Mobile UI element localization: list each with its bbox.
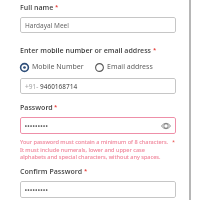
button[interactable]: Show password: [20, 117, 176, 134]
staticText: Your password must contain a minimum of …: [20, 138, 172, 160]
button[interactable]: +91-: [20, 78, 176, 94]
staticText: Full name: [20, 3, 54, 13]
staticText: 9460168714: [40, 82, 78, 91]
staticText: +91-: [25, 82, 39, 91]
staticText: *: [84, 167, 88, 175]
button[interactable]: Show password: [161, 121, 171, 131]
button[interactable]: Hardayal Meel: [20, 17, 176, 33]
staticText: Mobile Number: [32, 62, 84, 72]
staticText: *: [153, 46, 157, 54]
button[interactable]: Mobile Number: [20, 62, 84, 72]
staticText: Confirm Password: [20, 167, 83, 177]
staticText: *: [55, 3, 59, 11]
staticText: Email address: [107, 62, 153, 72]
button[interactable]: Email address: [95, 62, 153, 72]
staticText: *: [54, 103, 58, 111]
staticText: *: [172, 138, 176, 145]
staticText: Password: [20, 103, 53, 113]
button[interactable]: [20, 181, 176, 198]
other: Show password: [161, 121, 171, 131]
staticText: Enter mobile number or email address: [20, 46, 152, 56]
staticText: Hardayal Meel: [25, 21, 69, 30]
